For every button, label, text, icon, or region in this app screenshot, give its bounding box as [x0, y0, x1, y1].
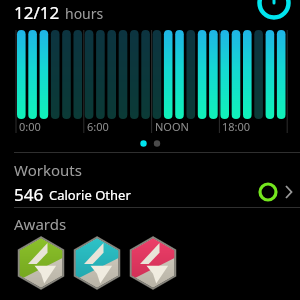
button[interactable]: Green award [14, 236, 68, 290]
button[interactable]: Teal award [70, 236, 124, 290]
button[interactable]: Activity rings [256, 0, 296, 40]
button[interactable]: Workouts, 546 Calorie Other [0, 154, 300, 206]
button[interactable]: Pink award [126, 236, 180, 290]
